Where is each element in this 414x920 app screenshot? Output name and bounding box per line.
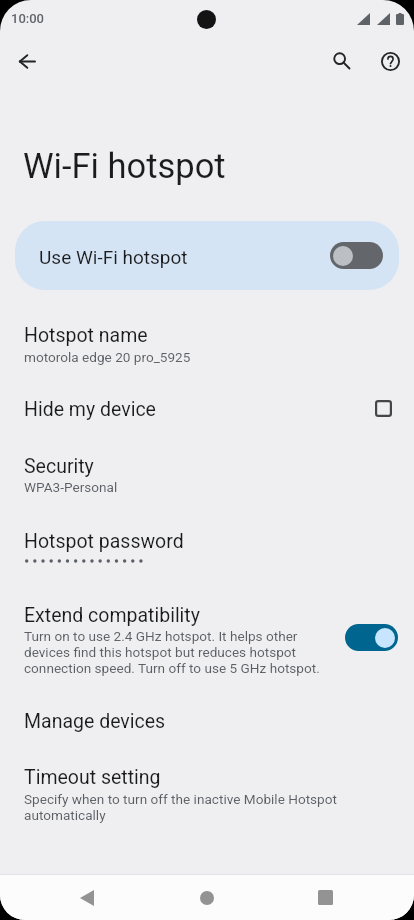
staticText: Timeout setting	[24, 766, 161, 789]
staticText: motorola edge 20 pro_5925	[24, 349, 191, 365]
button[interactable]: Extend compatibility	[0, 598, 414, 680]
staticText: Wi-Fi hotspot	[23, 146, 226, 186]
button[interactable]: Manage devices	[0, 702, 414, 736]
button[interactable]: Home	[177, 875, 237, 920]
staticText: Extend compatibility	[24, 604, 200, 627]
button[interactable]: Hotspot password	[0, 524, 414, 572]
button[interactable]: Hide my device	[0, 390, 414, 426]
button[interactable]: Back	[5, 39, 49, 83]
staticText: Hide my device	[24, 398, 156, 421]
staticText: Specify when to turn off the inactive Mo…	[24, 791, 344, 823]
button[interactable]: Security	[0, 449, 414, 501]
staticText: Turn on to use 2.4 GHz hotspot. It helps…	[24, 628, 327, 676]
staticText: Hotspot name	[24, 324, 148, 347]
staticText: WPA3-Personal	[24, 479, 118, 495]
staticText: Manage devices	[24, 710, 166, 733]
button[interactable]: Use Wi-Fi hotspot	[15, 221, 399, 290]
button[interactable]: Back	[57, 875, 117, 920]
button[interactable]: Search	[320, 39, 364, 83]
button[interactable]: Timeout setting	[0, 760, 414, 826]
button[interactable]: Hotspot name	[0, 318, 414, 370]
button[interactable]: Recents	[295, 875, 355, 920]
staticText: Security	[24, 455, 94, 478]
staticText: Hotspot password	[24, 530, 184, 553]
button[interactable]: Help	[368, 39, 412, 83]
staticText: 10:00	[11, 11, 44, 26]
staticText: Use Wi-Fi hotspot	[39, 246, 188, 268]
